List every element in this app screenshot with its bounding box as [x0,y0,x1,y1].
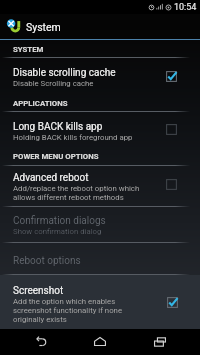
staticText: Disable scrolling cache [13,67,116,79]
staticText: Confirmation dialogs [13,215,106,227]
staticText: APPLICATIONS [13,99,68,108]
button[interactable]: Confirmation dialogs [0,207,200,242]
button[interactable]: Reboot options [0,243,200,274]
button[interactable]: Screenshot [0,275,200,329]
staticText: Reboot options [13,255,81,267]
button[interactable]: Disable scrolling cache [0,58,200,99]
staticText: 10:54 [174,2,197,13]
staticText: Screenshot [13,285,64,297]
button[interactable]: Advanced reboot [0,166,200,206]
button[interactable]: Recent apps [140,330,180,354]
staticText: Show confirmation dialog [13,227,102,236]
other: App icon [5,18,22,35]
staticText: POWER MENU OPTIONS [13,152,99,161]
button[interactable]: Home [80,330,120,354]
staticText: Add/replace the reboot option which allo… [13,184,140,202]
staticText: Disable Scrolling cache [13,79,94,88]
staticText: Holding BACK kills foreground app [13,133,133,142]
button[interactable]: Back [20,330,60,354]
staticText: System [26,21,61,33]
staticText: Add the option which enables screenshot … [13,297,123,324]
staticText: Advanced reboot [13,172,89,184]
staticText: Long BACK kills app [13,121,103,133]
button[interactable]: Long BACK kills app [0,112,200,152]
staticText: SYSTEM [13,45,44,54]
